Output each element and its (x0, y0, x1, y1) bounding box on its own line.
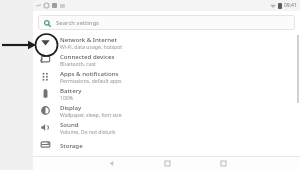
staticText: Wi-Fi, data usage, hotspot (60, 44, 123, 51)
button[interactable]: Storage (33, 136, 300, 153)
button[interactable]: Recent apps (195, 157, 251, 170)
staticText: Search settings (56, 19, 99, 27)
staticText: Storage (60, 141, 83, 149)
staticText: Permissions, default apps (60, 78, 122, 85)
staticText: 100% (60, 95, 73, 102)
button[interactable]: Back (83, 157, 139, 170)
staticText: Battery (60, 86, 82, 94)
staticText: Bluetooth, cast (60, 61, 96, 68)
button[interactable]: Search settings (38, 15, 295, 30)
staticText: Network & Internet (60, 35, 117, 43)
button[interactable]: Apps & notifications (33, 68, 300, 85)
staticText: Connected devices (60, 52, 115, 60)
button[interactable]: Battery (33, 85, 300, 102)
button[interactable]: Home (139, 157, 195, 170)
staticText: Volume, Do not disturb (60, 129, 116, 136)
button[interactable]: Connected devices (33, 51, 300, 68)
staticText: 09:41 (284, 2, 297, 9)
staticText: Wallpaper, sleep, font size (60, 112, 122, 119)
staticText: Sound (60, 120, 79, 128)
button[interactable]: Network & Internet (33, 34, 300, 51)
staticText: Apps & notifications (60, 69, 119, 77)
button[interactable]: Display (33, 102, 300, 119)
staticText: Display (60, 103, 82, 111)
button[interactable]: Sound (33, 119, 300, 136)
